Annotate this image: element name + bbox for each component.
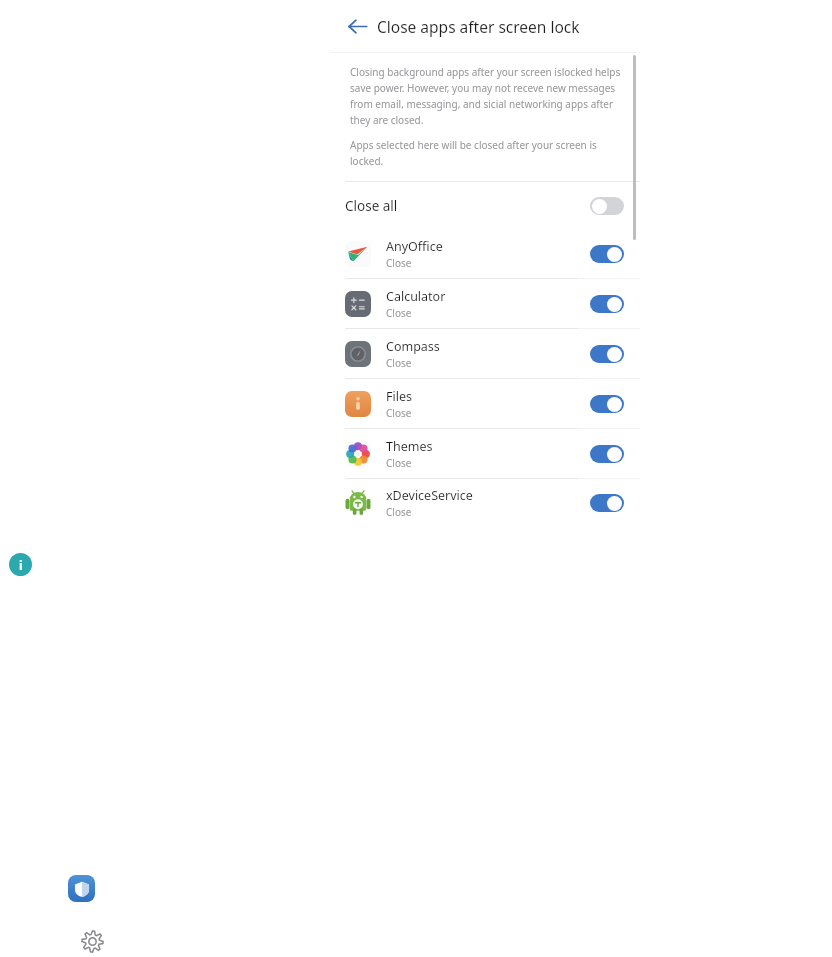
button[interactable]: Compass [330, 329, 640, 378]
button[interactable]: Information [9, 553, 32, 576]
staticText: Close [386, 406, 412, 420]
button[interactable]: xDeviceService [330, 479, 640, 527]
button[interactable]: AnyOffice [330, 229, 640, 278]
staticText: Close [386, 256, 412, 270]
button[interactable]: On [590, 345, 624, 363]
staticText: Themes [386, 438, 433, 455]
button[interactable]: On [590, 494, 624, 512]
button[interactable]: Security [68, 875, 95, 902]
staticText: Close all [345, 197, 398, 215]
button[interactable]: Themes [330, 429, 640, 478]
button[interactable]: Calculator [330, 279, 640, 328]
button[interactable]: On [590, 295, 624, 313]
staticText: Close apps after screen lock [377, 16, 580, 37]
staticText: xDeviceService [386, 487, 473, 504]
button[interactable]: On [590, 445, 624, 463]
staticText: Calculator [386, 288, 446, 305]
staticText: Closing background apps after your scree… [350, 65, 628, 126]
staticText: AnyOffice [386, 238, 443, 255]
staticText: Close [386, 306, 412, 320]
button[interactable]: Off [590, 197, 624, 215]
staticText: Close [386, 456, 412, 470]
staticText: i [19, 557, 23, 573]
staticText: Close [386, 356, 412, 370]
staticText: Close [386, 505, 412, 519]
button[interactable]: On [590, 395, 624, 413]
button[interactable]: Close all [330, 182, 640, 229]
button[interactable]: Back [341, 10, 373, 42]
staticText: Apps selected here will be closed after … [350, 138, 628, 167]
staticText: Compass [386, 338, 440, 355]
button[interactable]: On [590, 245, 624, 263]
button[interactable]: Files [330, 379, 640, 428]
button[interactable]: Settings [80, 929, 105, 954]
staticText: Files [386, 388, 412, 405]
